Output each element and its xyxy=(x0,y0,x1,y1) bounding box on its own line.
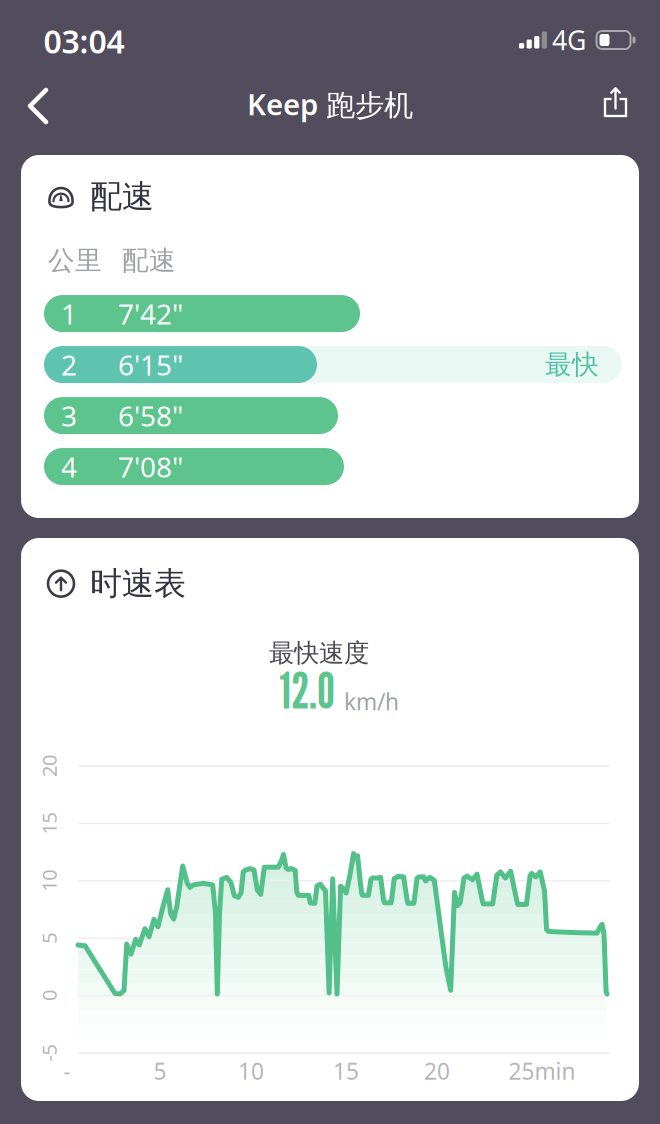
staticText: 5 xyxy=(153,1056,166,1086)
staticText: - xyxy=(63,1057,70,1085)
staticText: 12.0 xyxy=(279,660,335,720)
staticText: 6'58" xyxy=(118,397,183,434)
staticText: 4 xyxy=(61,448,77,485)
button[interactable]: Back xyxy=(10,78,66,134)
staticText: 0 xyxy=(43,982,54,1009)
staticText: 15 xyxy=(38,810,60,837)
staticText: 时速表 xyxy=(90,564,186,603)
staticText: 公里 xyxy=(48,244,102,277)
staticText: km/h xyxy=(344,686,399,716)
staticText: 20 xyxy=(38,753,60,779)
staticText: 7'08" xyxy=(118,448,183,485)
staticText: 15 xyxy=(333,1056,359,1086)
staticText: Keep 跑步机 xyxy=(247,84,413,123)
button[interactable]: Share xyxy=(589,78,645,134)
staticText: 10 xyxy=(38,867,60,894)
staticText: 3 xyxy=(61,397,77,434)
staticText: 4G xyxy=(552,22,586,58)
staticText: 6'15" xyxy=(118,346,183,383)
staticText: 最快速度 xyxy=(269,637,369,668)
staticText: 25min xyxy=(508,1056,575,1086)
staticText: 7'42" xyxy=(118,295,183,332)
staticText: 1 xyxy=(61,295,77,332)
staticText: 配速 xyxy=(90,177,154,216)
staticText: 最快 xyxy=(545,348,599,381)
staticText: 10 xyxy=(238,1056,264,1086)
staticText: 5 xyxy=(43,925,54,951)
staticText: 2 xyxy=(61,346,77,383)
staticText: 20 xyxy=(424,1056,450,1086)
staticText: -5 xyxy=(40,1040,57,1066)
staticText: 配速 xyxy=(122,244,176,277)
staticText: 03:04 xyxy=(43,20,124,62)
